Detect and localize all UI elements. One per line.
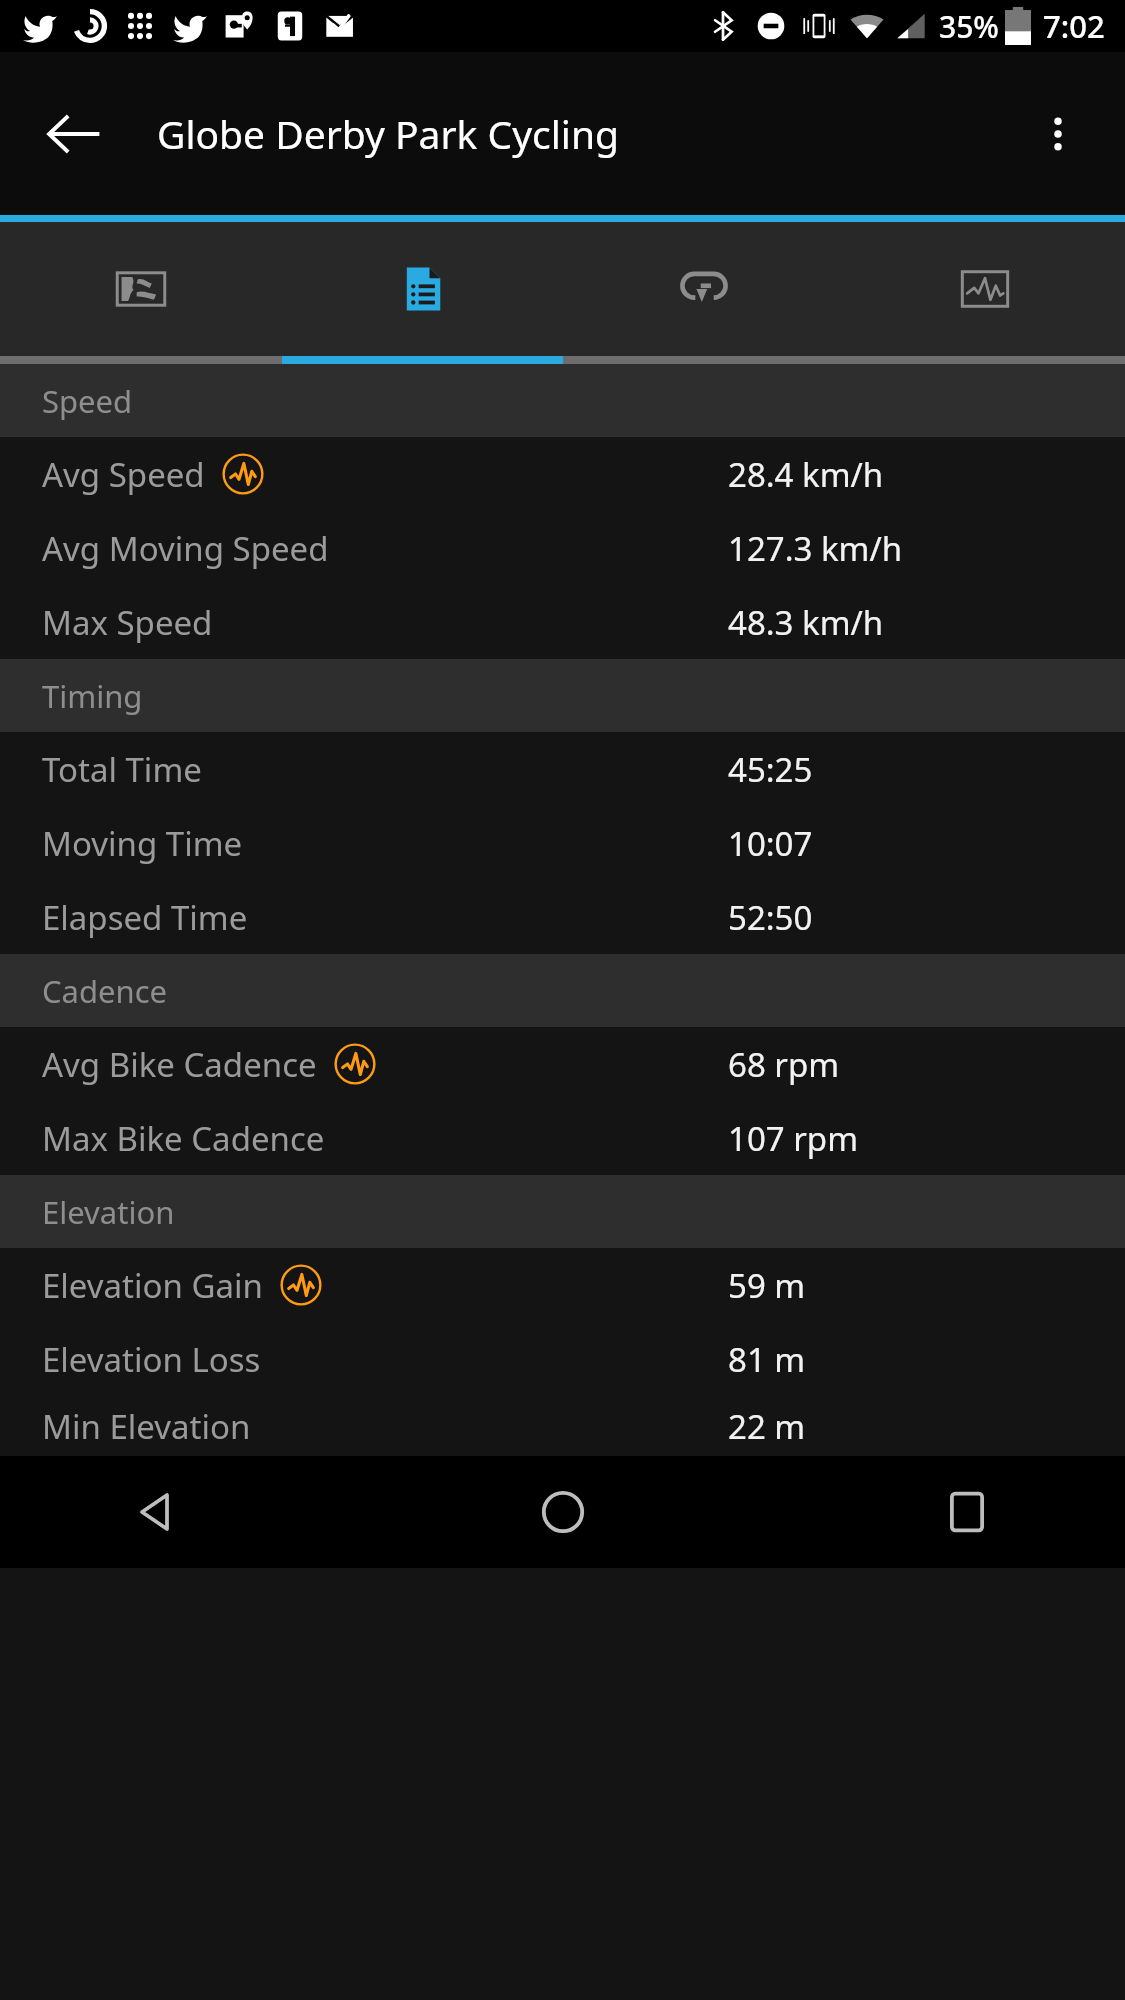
button[interactable]: Elevation Loss (0, 1322, 1125, 1396)
staticText: Speed (42, 380, 133, 422)
staticText: 45:25 (728, 747, 813, 792)
button[interactable]: Home (515, 1464, 611, 1560)
staticText: 107 rpm (728, 1116, 858, 1161)
button[interactable]: Min Elevation (0, 1396, 1125, 1456)
staticText: Timing (42, 675, 143, 717)
staticText: Avg Bike Cadence (42, 1042, 317, 1087)
button[interactable]: More options (1015, 91, 1101, 177)
button[interactable]: Max Bike Cadence (0, 1101, 1125, 1175)
button[interactable]: Recent apps (919, 1464, 1015, 1560)
staticText: 7:02 (1043, 5, 1105, 47)
button[interactable]: Elapsed Time (0, 880, 1125, 954)
button[interactable]: Summary (282, 222, 563, 356)
staticText: Globe Derby Park Cycling (157, 107, 619, 160)
staticText: 22 m (728, 1404, 806, 1449)
button[interactable]: Max Speed (0, 585, 1125, 659)
button[interactable]: Avg Moving Speed (0, 511, 1125, 585)
staticText: 10:07 (728, 821, 813, 866)
staticText: 81 m (728, 1337, 806, 1382)
staticText: 28.4 km/h (728, 452, 884, 497)
staticText: Moving Time (42, 821, 243, 866)
button[interactable]: Avg Bike Cadence (0, 1027, 1125, 1101)
staticText: Elapsed Time (42, 895, 248, 940)
button[interactable]: Back (110, 1464, 206, 1560)
button[interactable]: Moving Time (0, 806, 1125, 880)
staticText: 127.3 km/h (728, 526, 903, 571)
staticText: Max Bike Cadence (42, 1116, 325, 1161)
staticText: Total Time (42, 747, 202, 792)
staticText: Avg Moving Speed (42, 526, 329, 571)
button[interactable]: Laps (563, 222, 844, 356)
staticText: 68 rpm (728, 1042, 840, 1087)
staticText: 59 m (728, 1263, 806, 1308)
button[interactable]: Avg Speed (0, 437, 1125, 511)
staticText: Elevation Loss (42, 1337, 261, 1382)
button[interactable]: Elevation Gain (0, 1248, 1125, 1322)
staticText: Max Speed (42, 600, 213, 645)
staticText: Elevation (42, 1191, 175, 1233)
staticText: 35% (939, 6, 999, 47)
staticText: Min Elevation (42, 1404, 251, 1449)
staticText: Elevation Gain (42, 1263, 263, 1308)
staticText: Avg Speed (42, 452, 205, 497)
staticText: 52:50 (728, 895, 813, 940)
staticText: Cadence (42, 970, 168, 1012)
button[interactable]: Map (0, 222, 282, 356)
staticText: 48.3 km/h (728, 600, 884, 645)
button[interactable]: Charts (844, 222, 1125, 356)
button[interactable]: Navigate up (30, 91, 116, 177)
button[interactable]: Total Time (0, 732, 1125, 806)
